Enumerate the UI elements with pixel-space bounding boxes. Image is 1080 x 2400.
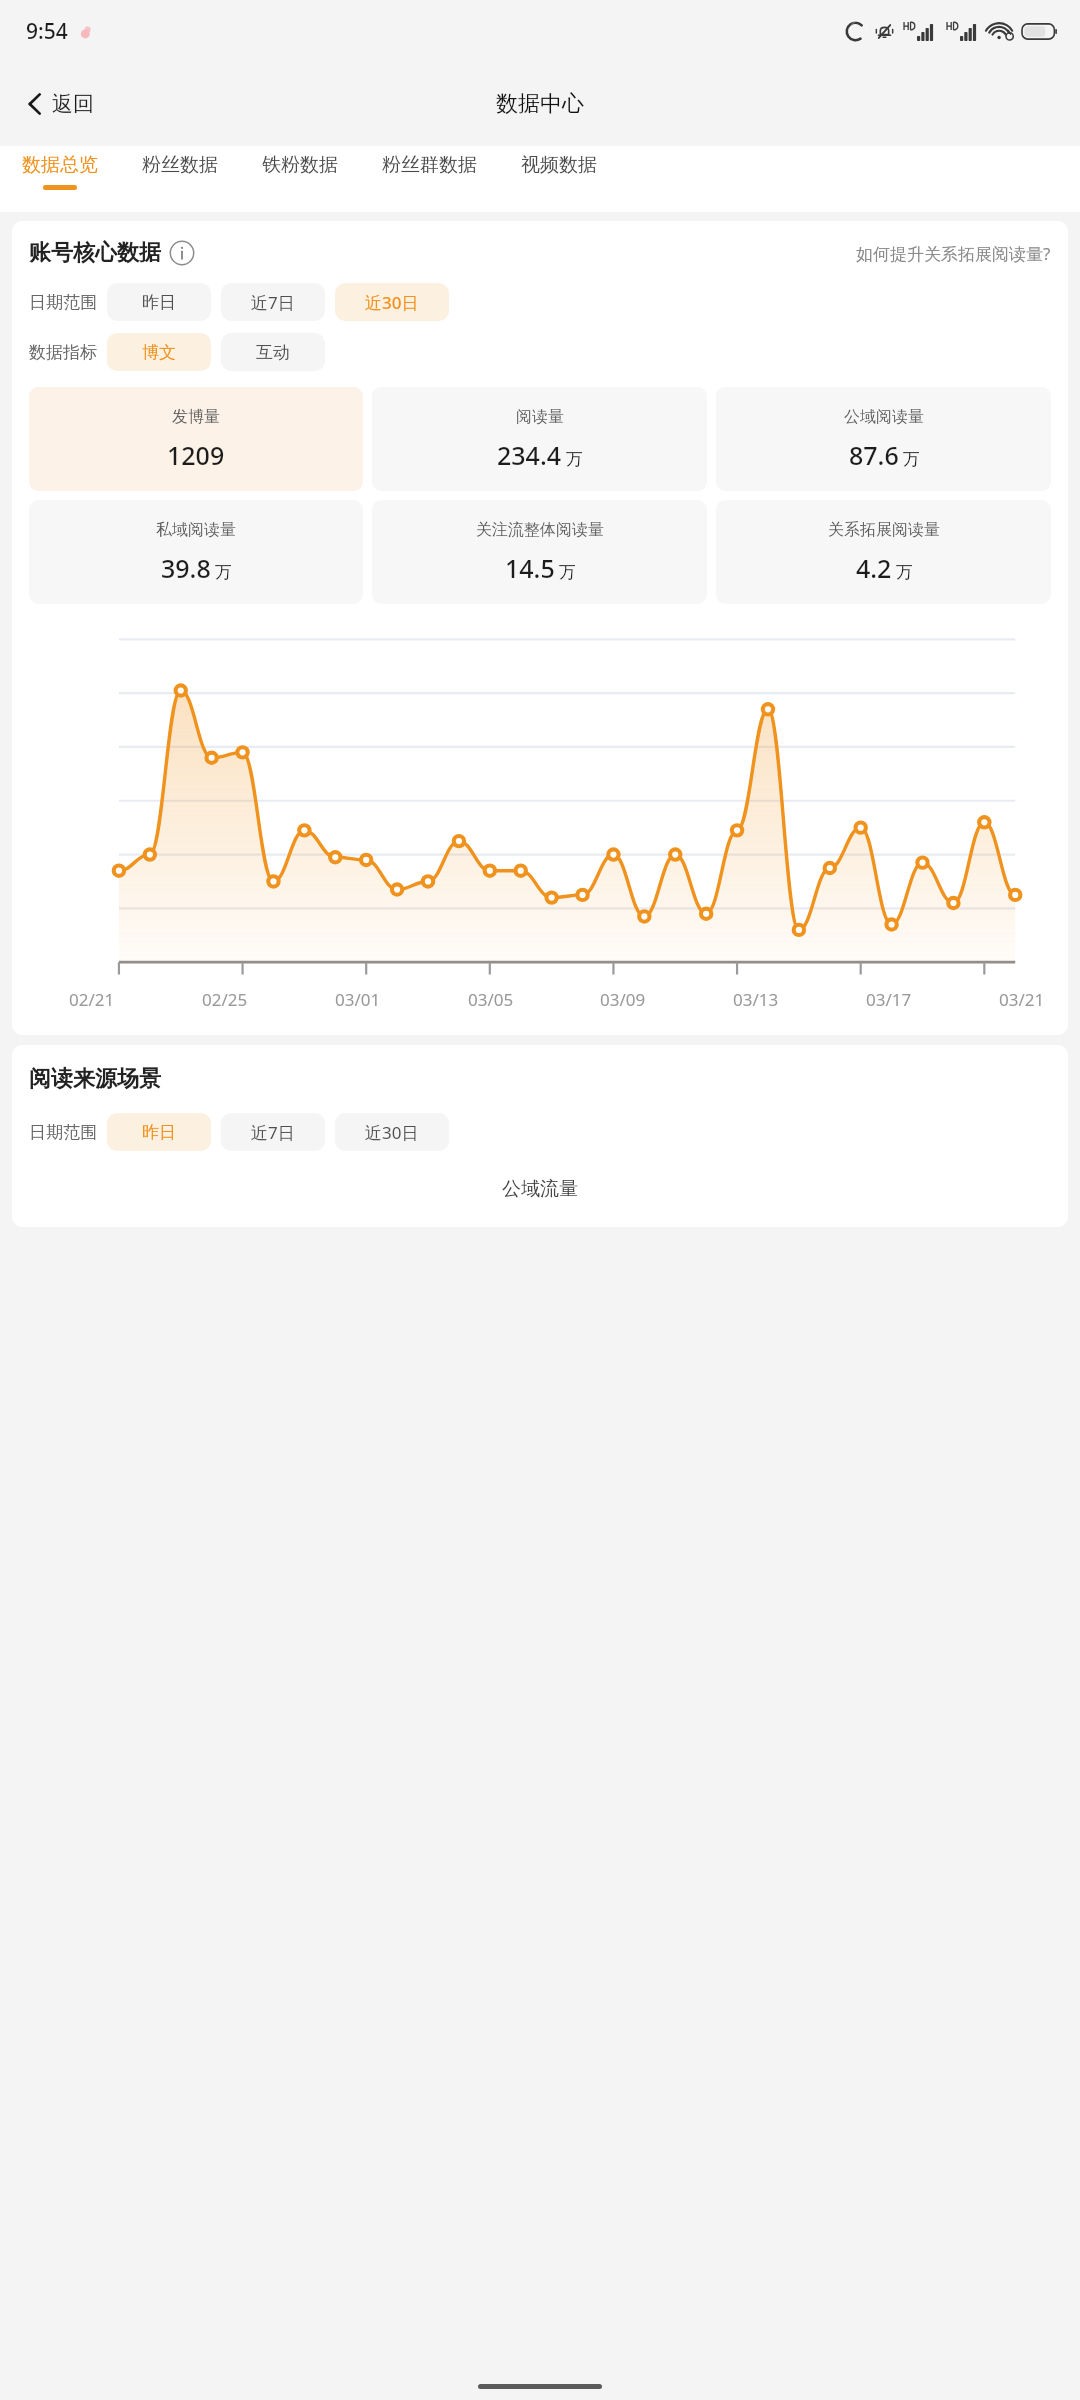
button[interactable]: 近7日 [221, 283, 325, 321]
staticText: 9:54 [26, 17, 68, 46]
staticText: 1209 [167, 438, 225, 472]
staticText: 234.4 [497, 438, 562, 472]
staticText: 近7日 [251, 1121, 295, 1144]
staticText: 03/17 [866, 988, 912, 1011]
staticText: 日期范围 [29, 292, 97, 313]
button[interactable]: 私域阅读量 [29, 500, 363, 604]
staticText: 4.2 [856, 551, 892, 585]
staticText: 公域流量 [502, 1177, 578, 1201]
staticText: 近30日 [365, 291, 419, 314]
staticText: 万 [559, 562, 576, 583]
staticText: 万 [896, 562, 913, 583]
staticText: 关系拓展阅读量 [828, 520, 940, 540]
staticText: 昨日 [142, 292, 176, 313]
button[interactable]: 返回 [0, 83, 108, 125]
staticText: 数据中心 [496, 90, 584, 118]
staticText: 03/01 [335, 988, 381, 1011]
staticText: 博文 [142, 342, 176, 363]
staticText: 返回 [52, 91, 94, 117]
button[interactable]: 如何提升关系拓展阅读量? [856, 242, 1051, 265]
staticText: 14.5 [505, 551, 555, 585]
button[interactable]: 互动 [221, 333, 325, 371]
staticText: 万 [566, 449, 583, 470]
other: 返回 [22, 91, 48, 117]
staticText: 数据指标 [29, 342, 97, 363]
staticText: 03/05 [468, 988, 514, 1011]
staticText: 03/21 [999, 988, 1045, 1011]
staticText: 日期范围 [29, 1122, 97, 1143]
button[interactable]: 近30日 [335, 1113, 449, 1151]
button[interactable]: 关系拓展阅读量 [716, 500, 1051, 604]
button[interactable]: 数据总览 [0, 146, 120, 190]
staticText: 昨日 [142, 1122, 176, 1143]
button[interactable]: 铁粉数据 [240, 146, 360, 185]
staticText: 粉丝数据 [142, 153, 218, 177]
staticText: 万 [903, 449, 920, 470]
staticText: 03/09 [600, 988, 646, 1011]
button[interactable]: 昨日 [107, 1113, 211, 1151]
staticText: 87.6 [849, 438, 899, 472]
staticText: 互动 [256, 342, 290, 363]
staticText: 近30日 [365, 1121, 419, 1144]
staticText: 关注流整体阅读量 [476, 520, 604, 540]
button[interactable]: 说明 [169, 240, 195, 266]
staticText: 近7日 [251, 291, 295, 314]
staticText: 39.8 [161, 551, 211, 585]
staticText: 私域阅读量 [156, 520, 236, 540]
staticText: 公域阅读量 [844, 407, 924, 427]
staticText: 02/21 [69, 988, 115, 1011]
button[interactable]: 近30日 [335, 283, 449, 321]
button[interactable]: 昨日 [107, 283, 211, 321]
staticText: 视频数据 [521, 153, 597, 177]
button[interactable]: 粉丝数据 [120, 146, 240, 185]
staticText: 阅读来源场景 [29, 1065, 161, 1093]
button[interactable]: 近7日 [221, 1113, 325, 1151]
button[interactable]: 公域阅读量 [716, 387, 1051, 491]
button[interactable]: 视频数据 [499, 146, 619, 185]
staticText: 02/25 [202, 988, 248, 1011]
button[interactable]: 发博量 [29, 387, 363, 491]
staticText: 万 [215, 562, 232, 583]
button[interactable]: 博文 [107, 333, 211, 371]
staticText: 03/13 [733, 988, 779, 1011]
button[interactable]: 阅读量 [372, 387, 707, 491]
staticText: 发博量 [172, 407, 220, 427]
staticText: 铁粉数据 [262, 153, 338, 177]
button[interactable]: 关注流整体阅读量 [372, 500, 707, 604]
staticText: 账号核心数据 [29, 239, 161, 267]
staticText: 粉丝群数据 [382, 153, 477, 177]
staticText: 数据总览 [22, 153, 98, 177]
button[interactable]: 粉丝群数据 [360, 146, 499, 185]
staticText: 阅读量 [516, 407, 564, 427]
